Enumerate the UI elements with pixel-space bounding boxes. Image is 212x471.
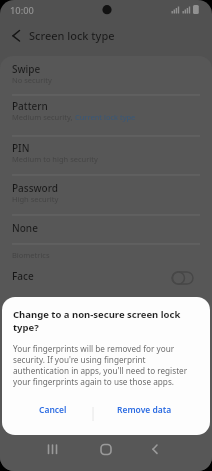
button[interactable]: Swipe bbox=[0, 58, 212, 95]
staticText: Change to a non-secure screen lock bbox=[13, 308, 181, 321]
button[interactable] bbox=[6, 26, 26, 46]
staticText: Current lock type bbox=[75, 112, 136, 122]
button[interactable]: Remove data bbox=[104, 395, 185, 425]
button[interactable]: Face bbox=[0, 262, 212, 296]
staticText: PIN bbox=[12, 141, 30, 155]
staticText: Medium security, bbox=[12, 112, 75, 122]
staticText: type? bbox=[13, 321, 39, 334]
staticText: Screen lock type bbox=[29, 28, 115, 43]
staticText: Pattern bbox=[12, 99, 48, 113]
staticText: Swipe bbox=[12, 62, 41, 76]
button[interactable] bbox=[144, 438, 174, 460]
staticText: Password bbox=[12, 181, 58, 195]
staticText: No security bbox=[12, 75, 52, 85]
button[interactable]: Pattern bbox=[0, 95, 212, 136]
staticText: your fingerprints again to use those app… bbox=[13, 376, 175, 387]
button[interactable]: Password bbox=[0, 175, 212, 215]
staticText: Biometrics bbox=[12, 250, 50, 260]
button[interactable]: None bbox=[0, 215, 212, 244]
staticText: Medium to high security bbox=[12, 154, 98, 164]
staticText: authentication in apps, you'll need to r… bbox=[13, 365, 188, 376]
staticText: 10:00 bbox=[10, 4, 34, 17]
button[interactable] bbox=[38, 438, 68, 460]
staticText: High security bbox=[12, 194, 59, 204]
staticText: Face bbox=[12, 269, 34, 283]
staticText: security. If you're using fingerprint bbox=[13, 354, 146, 365]
staticText: Cancel bbox=[39, 404, 67, 416]
staticText: Your fingerprints will be removed for yo… bbox=[13, 343, 175, 354]
staticText: None bbox=[12, 221, 38, 235]
staticText: Remove data bbox=[117, 404, 172, 416]
button[interactable]: Cancel bbox=[13, 395, 93, 425]
button[interactable]: PIN bbox=[0, 136, 212, 175]
button[interactable] bbox=[91, 438, 121, 460]
